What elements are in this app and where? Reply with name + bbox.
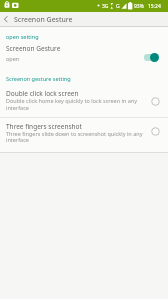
staticText: G [116, 3, 120, 10]
staticText: interface [6, 136, 29, 143]
staticText: Three fingers screenshot [6, 122, 82, 131]
staticText: Screenon Gesture [14, 15, 73, 25]
staticText: Double click lock screen [6, 89, 79, 98]
staticText: open [6, 55, 20, 62]
staticText: Screenon gesture setting [6, 75, 71, 82]
staticText: Three fingers slide down to screenshot q… [6, 130, 143, 137]
button[interactable] [144, 54, 158, 61]
staticText: open setting [6, 33, 39, 40]
staticText: 3G [102, 3, 109, 10]
staticText: Screenon Gesture [6, 44, 61, 53]
button[interactable]: Three fingers screenshot [0, 118, 168, 153]
button[interactable]: Screenon Gesture [0, 12, 71, 26]
button[interactable]: Double click lock screen [0, 86, 168, 117]
staticText: interface [6, 104, 29, 111]
staticText: 15:24 [148, 3, 161, 10]
staticText: Double click home key quickly to lock sc… [6, 97, 138, 104]
staticText: 93% [134, 3, 144, 10]
button[interactable]: Screenon Gesture [0, 41, 168, 67]
